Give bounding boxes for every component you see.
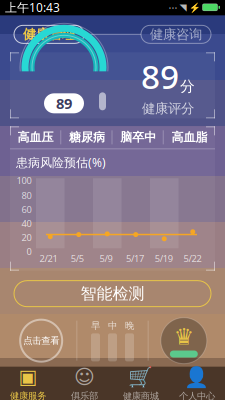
staticText: 5/17 <box>126 252 144 265</box>
button[interactable]: 👤 <box>169 367 225 400</box>
staticText: 20 <box>21 231 31 243</box>
staticText: 高血压 <box>18 130 54 145</box>
button[interactable]: 高血压 <box>10 126 61 148</box>
staticText: 80 <box>21 189 31 201</box>
staticText: 5/22 <box>184 252 202 265</box>
staticText: 🛒 <box>128 365 153 388</box>
staticText: 分 <box>180 77 195 95</box>
staticText <box>177 1 179 13</box>
button[interactable]: 健康管理 <box>14 25 84 43</box>
button[interactable]: 会员等级 <box>149 315 219 367</box>
staticText: ♛ <box>174 324 194 349</box>
staticText: 健康商城 <box>123 390 159 400</box>
staticText: 早 <box>91 320 100 331</box>
staticText: 100 <box>16 174 31 187</box>
staticText: ☺ <box>74 366 95 388</box>
staticText: 5/19 <box>155 252 173 265</box>
staticText: 中 <box>108 320 117 331</box>
staticText: 点击查看 <box>23 335 59 346</box>
staticText: 上午10:43 <box>5 0 60 15</box>
button[interactable]: 脑卒中 <box>112 126 164 148</box>
staticText: 👤 <box>184 365 209 388</box>
staticText: 患病风险预估(%) <box>16 154 106 170</box>
staticText: ⚡ <box>186 1 200 13</box>
staticText: 高血脂 <box>171 130 207 145</box>
staticText: 脑卒中 <box>120 130 156 145</box>
staticText: 俱乐部 <box>71 390 98 400</box>
button[interactable]: 健康咨询 <box>141 25 211 43</box>
staticText: 5/5 <box>71 252 84 265</box>
staticText: ◥ <box>179 2 186 13</box>
staticText: 60 <box>21 203 31 215</box>
staticText: 5/9 <box>100 252 113 265</box>
button[interactable]: 糖尿病 <box>61 126 112 148</box>
staticText: 40 <box>21 217 31 229</box>
button[interactable]: 早 <box>77 315 148 367</box>
staticText: 智能检测 <box>80 284 144 303</box>
staticText: 健康管理 <box>23 26 75 42</box>
staticText: ▣ <box>19 366 38 388</box>
staticText: 89 <box>56 94 72 113</box>
staticText: 晚 <box>125 320 134 331</box>
staticText: 个人中心 <box>179 390 215 400</box>
staticText: 0 <box>26 245 31 257</box>
staticText: 健康咨询 <box>150 26 202 42</box>
button[interactable]: 点击查看 <box>6 315 76 367</box>
staticText: 健康评分 <box>142 100 194 117</box>
staticText: ··· <box>168 0 177 14</box>
button[interactable]: 🛒 <box>112 367 169 400</box>
button[interactable]: ▣ <box>0 367 56 400</box>
button[interactable]: 高血脂 <box>164 126 215 148</box>
button[interactable]: 智能检测 <box>14 281 211 307</box>
staticText: 糖尿病 <box>69 130 105 145</box>
staticText: 2/21 <box>39 252 57 265</box>
staticText: 健康服务 <box>10 390 46 400</box>
button[interactable]: ☺ <box>56 367 113 400</box>
staticText: 89 <box>141 54 179 98</box>
